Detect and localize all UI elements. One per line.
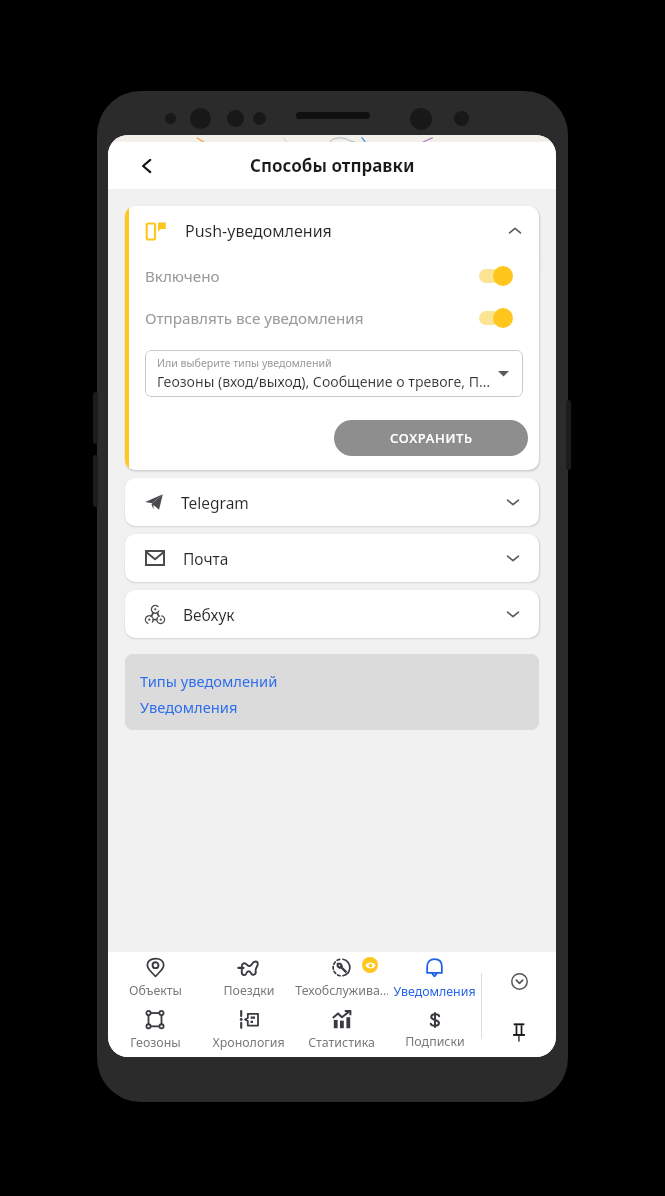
staticText: Хронология: [212, 1034, 285, 1051]
staticText: Геозоны: [130, 1034, 181, 1051]
button[interactable]: Статистика: [295, 1004, 388, 1057]
button[interactable]: СОХРАНИТЬ: [334, 420, 528, 456]
button[interactable]: Включено: [129, 256, 539, 296]
button[interactable]: Геозоны: [108, 1004, 202, 1057]
staticText: Почта: [183, 548, 229, 569]
staticText: Геозоны (вход/выход), Сообщение о тревог…: [157, 372, 491, 391]
button[interactable]: Или выберите типы уведомлений: [145, 350, 523, 397]
staticText: Способы отправки: [250, 154, 415, 177]
button[interactable]: Техобслужива…: [295, 952, 388, 1004]
button[interactable]: Подписки: [388, 1004, 481, 1057]
staticText: Включено: [145, 266, 220, 287]
button[interactable]: Уведомления: [140, 697, 238, 717]
staticText: Техобслужива…: [295, 982, 388, 999]
button[interactable]: Объекты: [108, 952, 202, 1004]
staticText: Вебхук: [183, 604, 235, 625]
button[interactable]: Поездки: [202, 952, 295, 1004]
staticText: Telegram: [181, 492, 249, 513]
button[interactable]: Push-уведомления: [129, 206, 539, 256]
button[interactable]: Expand: [482, 952, 556, 1004]
staticText: Статистика: [308, 1034, 375, 1051]
staticText: Или выберите типы уведомлений: [157, 356, 332, 370]
button[interactable]: Вебхук: [125, 590, 539, 638]
staticText: СОХРАНИТЬ: [390, 429, 473, 447]
button[interactable]: Pin: [482, 1004, 556, 1057]
staticText: Подписки: [405, 1033, 465, 1050]
button[interactable]: Back: [126, 146, 166, 186]
button[interactable]: Telegram: [125, 478, 539, 526]
staticText: Уведомления: [393, 983, 476, 1000]
staticText: Объекты: [129, 982, 182, 999]
button[interactable]: Уведомления: [388, 952, 481, 1004]
button[interactable]: Отправлять все уведомления: [129, 298, 539, 338]
button[interactable]: Почта: [125, 534, 539, 582]
staticText: Push-уведомления: [185, 220, 332, 242]
staticText: Отправлять все уведомления: [145, 308, 364, 329]
button[interactable]: Хронология: [202, 1004, 295, 1057]
button[interactable]: Типы уведомлений: [140, 671, 278, 691]
staticText: Поездки: [223, 982, 275, 999]
